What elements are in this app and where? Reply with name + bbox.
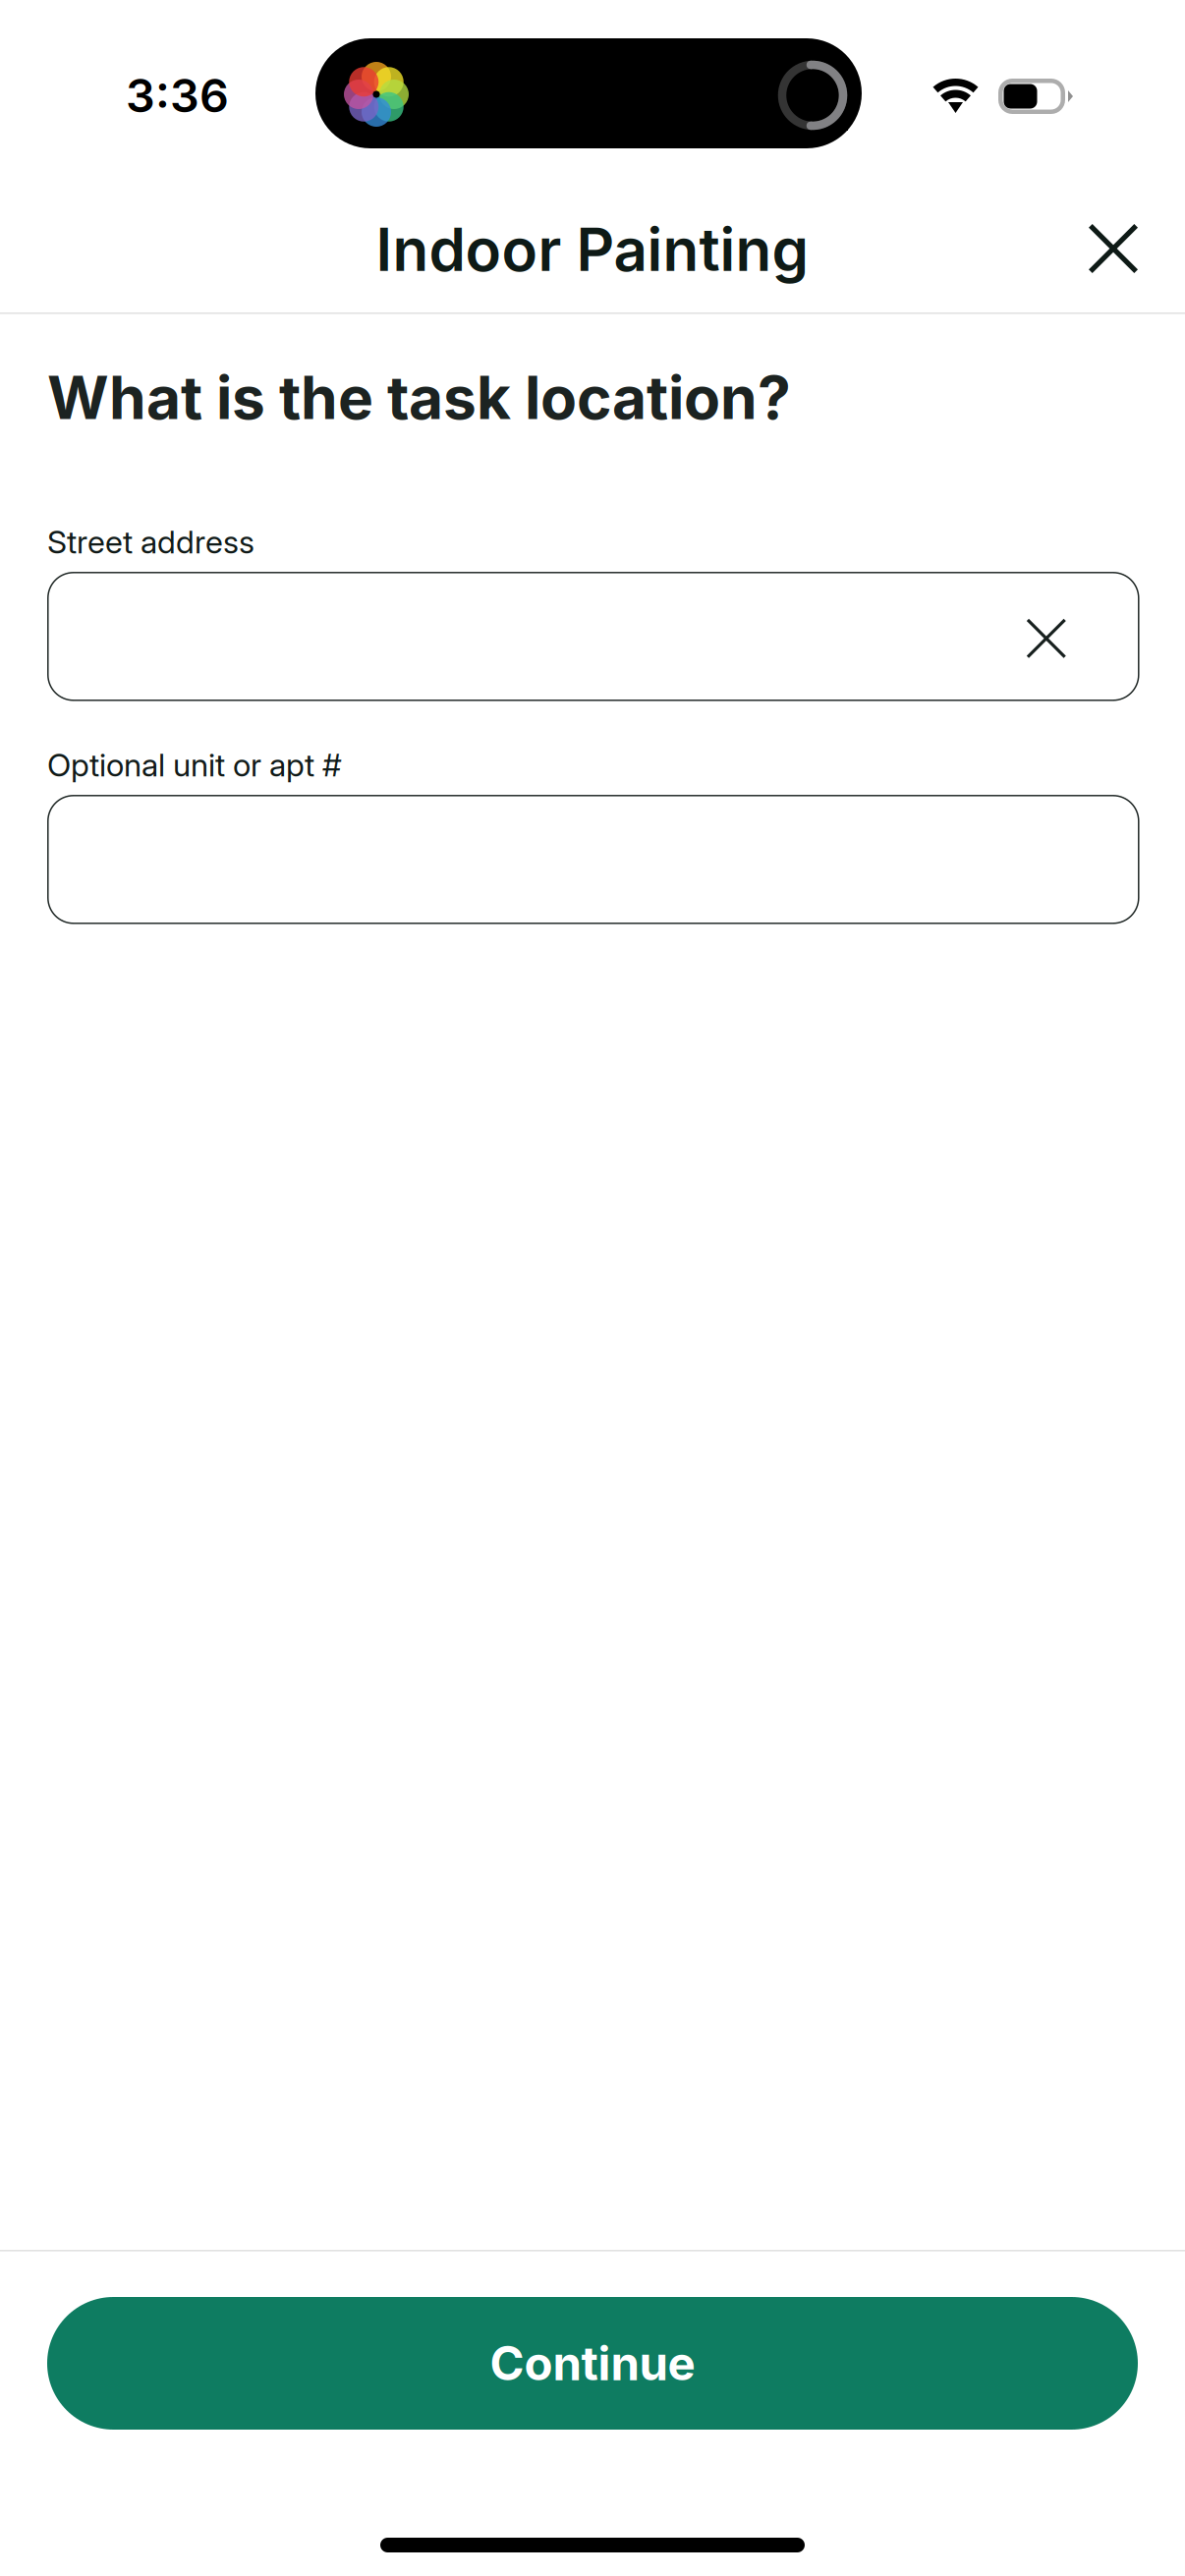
button[interactable]: Street address bbox=[48, 573, 1139, 700]
staticText: Continue bbox=[490, 2335, 695, 2391]
button[interactable]: Continue bbox=[47, 2297, 1138, 2430]
button[interactable]: Close bbox=[1065, 200, 1161, 297]
staticText: Optional unit or apt # bbox=[47, 746, 342, 784]
button[interactable]: Optional unit or apt # bbox=[48, 796, 1139, 923]
staticText: Indoor Painting bbox=[376, 214, 809, 285]
staticText: Street address bbox=[47, 523, 254, 561]
staticText: 3:36 bbox=[126, 68, 229, 123]
staticText: What is the task location? bbox=[47, 362, 791, 433]
